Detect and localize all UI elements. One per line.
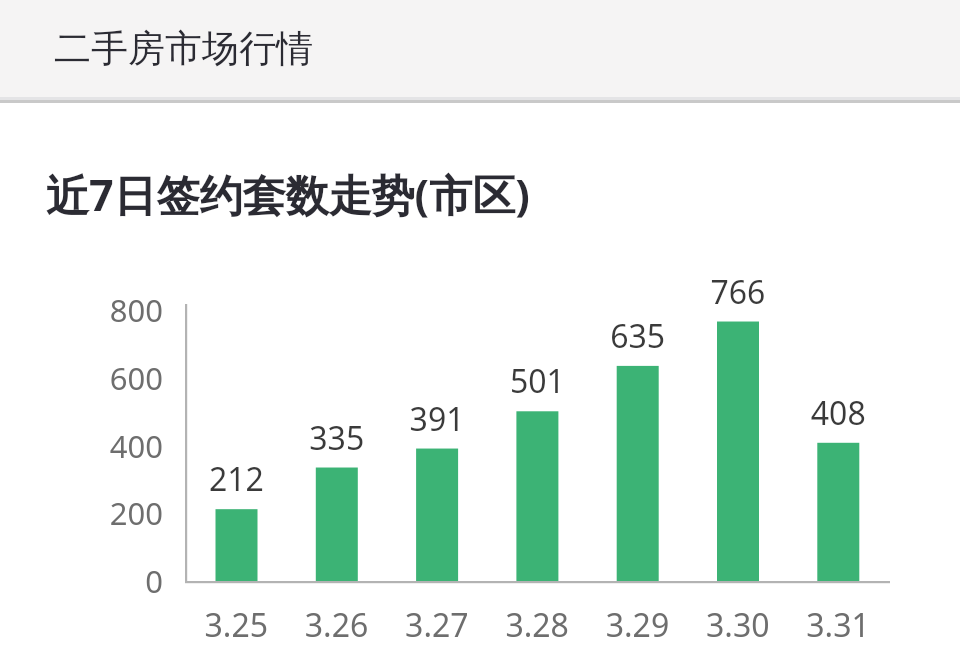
button[interactable]: 二手房市场行情: [0, 0, 960, 100]
staticText: 近7日签约套数走势(市区): [46, 165, 530, 224]
staticText: 二手房市场行情: [54, 25, 313, 72]
